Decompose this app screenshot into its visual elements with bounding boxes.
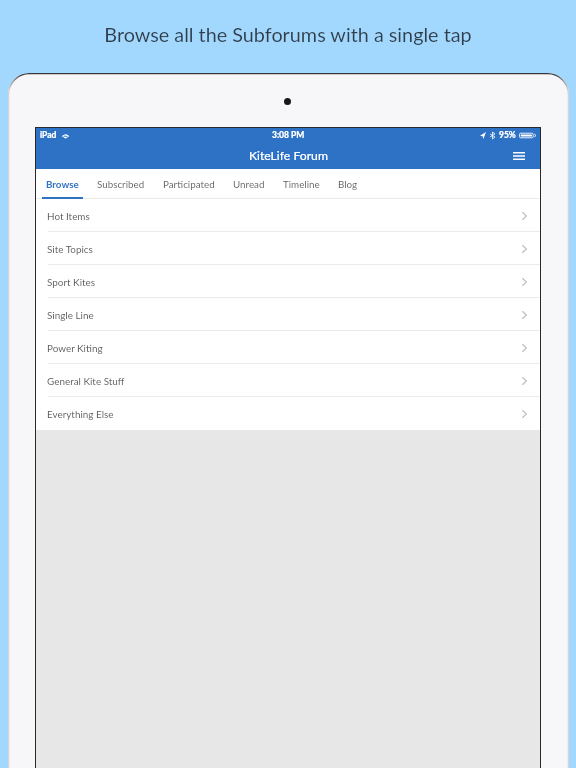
button[interactable]: Unread [224,169,274,199]
staticText: Everything Else [47,408,114,420]
button[interactable]: Timeline [274,169,329,199]
staticText: 3:08 PM [272,130,305,140]
staticText: Power Kiting [47,342,103,354]
button[interactable]: Browse [37,169,88,199]
staticText: Subscribed [97,178,145,190]
staticText: Sport Kites [47,276,96,288]
staticText: Hot Items [47,210,90,222]
button[interactable]: Site Topics [36,232,540,265]
staticText: Browse [46,178,79,190]
button[interactable]: Menu [505,142,533,169]
button[interactable]: Blog [329,169,367,199]
button[interactable]: Sport Kites [36,265,540,298]
button[interactable]: General Kite Stuff [36,364,540,397]
staticText: Single Line [47,309,94,321]
button[interactable]: Everything Else [36,397,540,430]
staticText: 95% [499,130,516,140]
staticText: Site Topics [47,243,93,255]
staticText: KiteLife Forum [249,148,328,163]
button[interactable]: Single Line [36,298,540,331]
button[interactable]: Subscribed [88,169,154,199]
staticText: Participated [163,178,215,190]
staticText: Unread [233,178,265,190]
staticText: iPad [40,130,57,140]
button[interactable]: Power Kiting [36,331,540,364]
button[interactable]: Participated [154,169,224,199]
staticText: General Kite Stuff [47,375,125,387]
staticText: Timeline [283,178,320,190]
button[interactable]: Hot Items [36,199,540,232]
staticText: Blog [338,178,358,190]
staticText: Browse all the Subforums with a single t… [104,22,472,46]
